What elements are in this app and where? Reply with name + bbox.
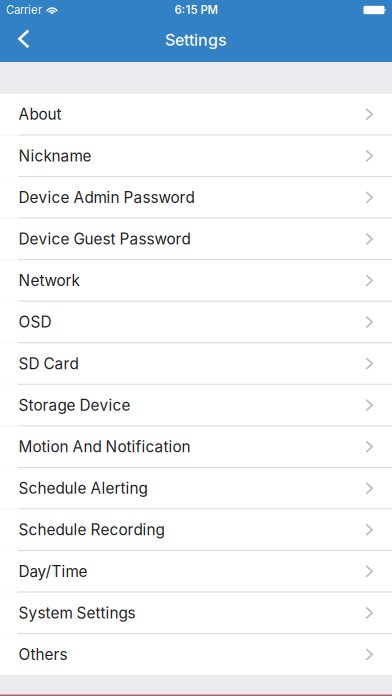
button[interactable]: OSD <box>0 302 392 342</box>
staticText: Network <box>18 271 79 290</box>
button[interactable]: Schedule Alerting <box>0 468 392 508</box>
staticText: 6:15 PM <box>174 3 217 17</box>
staticText: Day/Time <box>18 562 87 581</box>
staticText: SD Card <box>18 354 78 373</box>
staticText: Schedule Alerting <box>18 479 147 497</box>
button[interactable]: SD Card <box>0 343 392 384</box>
staticText: Carrier <box>6 3 42 17</box>
staticText: OSD <box>18 313 51 331</box>
staticText: Schedule Recording <box>18 520 164 539</box>
staticText: Settings <box>165 30 227 50</box>
staticText: Others <box>18 645 67 664</box>
button[interactable]: System Settings <box>0 593 392 633</box>
staticText: System Settings <box>18 604 135 622</box>
staticText: Device Guest Password <box>18 230 190 248</box>
button[interactable]: Network <box>0 260 392 301</box>
button[interactable]: Nickname <box>0 136 392 176</box>
button[interactable]: Others <box>0 634 392 675</box>
button[interactable]: Day/Time <box>0 551 392 592</box>
button[interactable]: Schedule Recording <box>0 509 392 550</box>
button[interactable]: Device Admin Password <box>0 177 392 218</box>
button[interactable]: Motion And Notification <box>0 426 392 467</box>
button[interactable]: Device Guest Password <box>0 219 392 259</box>
staticText: Storage Device <box>18 396 130 414</box>
staticText: Nickname <box>18 146 91 165</box>
button[interactable]: Storage Device <box>0 385 392 425</box>
staticText: Device Admin Password <box>18 188 194 207</box>
staticText: About <box>18 105 61 124</box>
button[interactable]: About <box>0 94 392 134</box>
staticText: Motion And Notification <box>18 437 190 456</box>
button[interactable]: Back <box>0 20 44 62</box>
